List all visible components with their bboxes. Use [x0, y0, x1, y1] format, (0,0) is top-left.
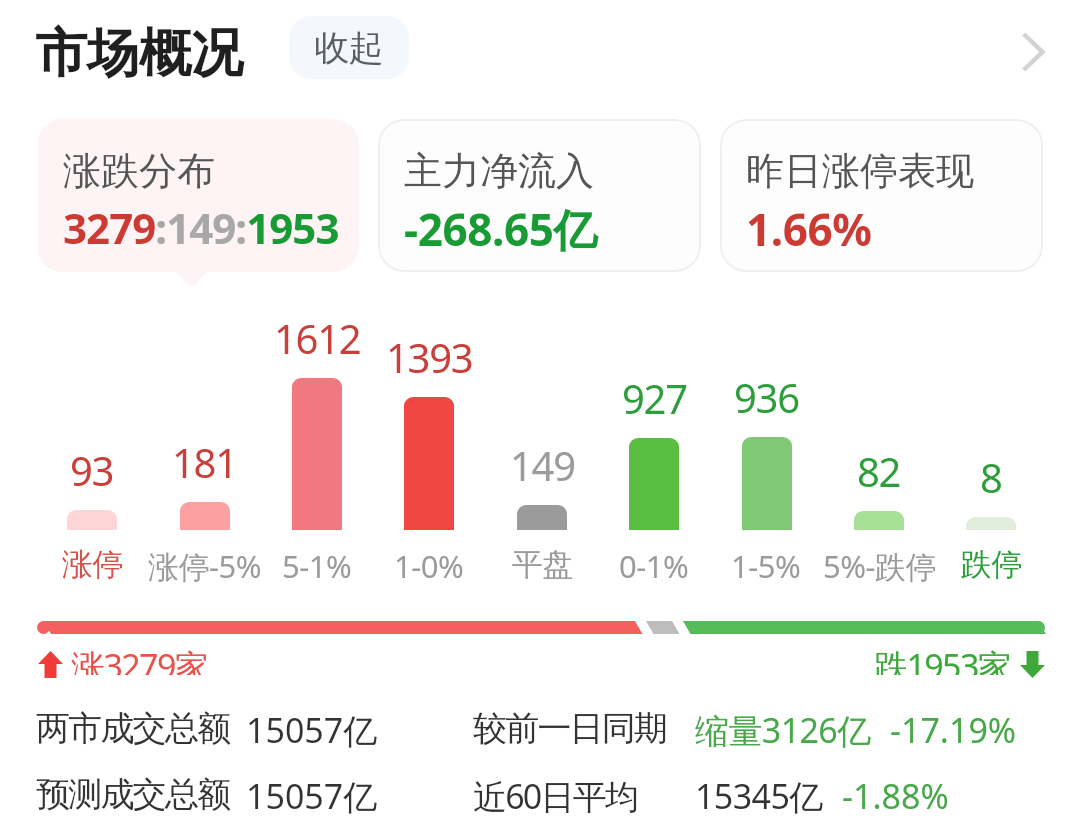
- button[interactable]: 收起: [289, 16, 409, 79]
- staticText: 涨3279家: [71, 643, 208, 675]
- staticText: 涨停: [62, 545, 123, 584]
- button[interactable]: 1-5% 936: [710, 318, 822, 584]
- staticText: 5-1%: [282, 545, 352, 587]
- button[interactable]: 5-1% 1612: [261, 318, 373, 584]
- staticText: -1.88%: [842, 773, 949, 819]
- button[interactable]: 平盘 149: [486, 318, 598, 584]
- staticText: 82: [857, 444, 901, 498]
- staticText: 跌停: [961, 545, 1022, 584]
- button[interactable]: 涨跌分布: [37, 119, 359, 272]
- staticText: 两市成交总额: [36, 707, 230, 750]
- staticText: 跌1953家: [874, 643, 1011, 675]
- button[interactable]: 涨停 93: [36, 318, 148, 584]
- staticText: 3279:149:1953: [63, 199, 339, 256]
- staticText: 149: [510, 438, 575, 492]
- staticText: 15345亿: [695, 773, 823, 819]
- staticText: 93: [70, 443, 114, 497]
- button[interactable]: More: [990, 10, 1074, 94]
- staticText: 8: [980, 450, 1002, 504]
- staticText: 936: [734, 370, 799, 424]
- staticText: 涨停-5%: [148, 545, 260, 587]
- staticText: 5%-跌停: [823, 545, 935, 587]
- staticText: 1393: [386, 330, 473, 384]
- button[interactable]: 0-1% 927: [598, 318, 710, 584]
- button[interactable]: Advance decline ratio: [37, 621, 1045, 634]
- staticText: 平盘: [512, 545, 573, 584]
- staticText: 1612: [274, 311, 361, 365]
- staticText: 近60日平均: [473, 773, 638, 819]
- button[interactable]: 5%-跌停 82: [823, 318, 935, 584]
- staticText: 1.66%: [746, 199, 872, 259]
- staticText: 927: [622, 371, 687, 425]
- staticText: 较前一日同期: [473, 707, 667, 750]
- staticText: -17.19%: [890, 707, 1017, 753]
- staticText: 缩量3126亿: [695, 707, 871, 753]
- staticText: 1-0%: [394, 545, 464, 587]
- button[interactable]: 涨停-5% 181: [148, 318, 260, 584]
- staticText: 15057亿: [246, 773, 378, 819]
- staticText: 1-5%: [731, 545, 801, 587]
- staticText: 市场概况: [35, 21, 243, 87]
- button[interactable]: 1-0% 1393: [373, 318, 485, 584]
- button[interactable]: 昨日涨停表现: [720, 119, 1043, 272]
- staticText: 181: [172, 435, 237, 489]
- staticText: 主力净流入: [404, 147, 594, 195]
- button[interactable]: 跌停 8: [935, 318, 1047, 584]
- staticText: 收起: [315, 26, 383, 70]
- staticText: -268.65亿: [404, 199, 598, 259]
- staticText: 涨跌分布: [63, 147, 215, 195]
- staticText: 预测成交总额: [36, 773, 230, 816]
- staticText: 昨日涨停表现: [746, 147, 974, 195]
- button[interactable]: 主力净流入: [378, 119, 701, 272]
- staticText: 15057亿: [246, 707, 378, 753]
- staticText: 0-1%: [619, 545, 689, 587]
